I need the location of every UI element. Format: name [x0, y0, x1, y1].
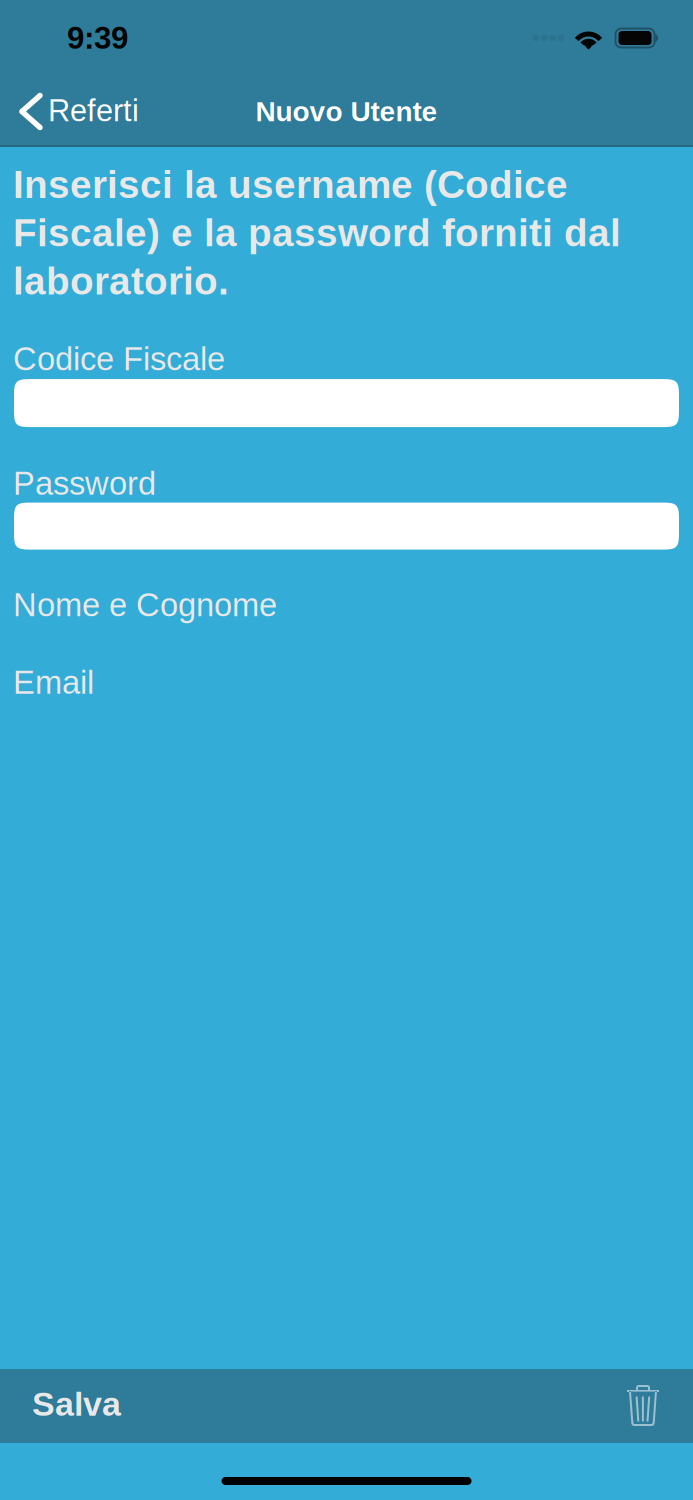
- staticText: Codice Fiscale: [13, 341, 225, 377]
- staticText: Nuovo Utente: [255, 96, 437, 127]
- staticText: Password: [13, 465, 156, 502]
- staticText: Email: [13, 664, 94, 701]
- button[interactable]: Elimina: [611, 1369, 693, 1443]
- staticText: 9:39: [67, 20, 128, 55]
- button[interactable]: Referti: [0, 76, 155, 147]
- staticText: Referti: [48, 93, 139, 128]
- button[interactable]: [14, 379, 679, 427]
- staticText: Inserisci la username (Codice Fiscale) e…: [13, 163, 621, 303]
- button[interactable]: Salva: [0, 1369, 145, 1443]
- staticText: Nome e Cognome: [13, 587, 277, 623]
- button[interactable]: [14, 503, 679, 550]
- staticText: Salva: [32, 1385, 121, 1423]
